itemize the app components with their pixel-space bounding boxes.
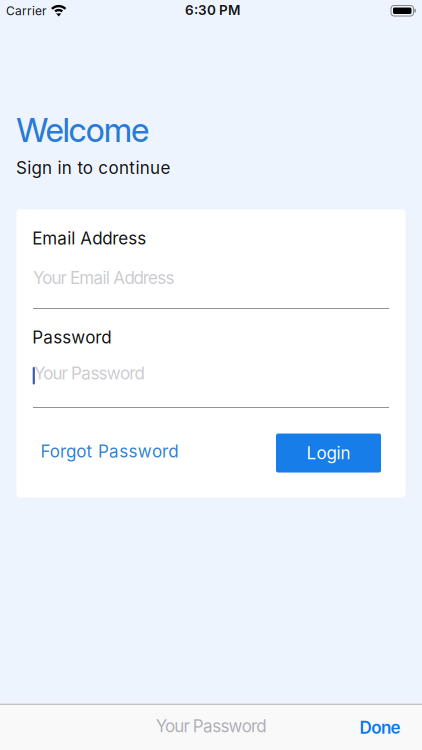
button[interactable]: Forgot Password: [40, 441, 178, 462]
staticText: 6:30 PM: [185, 2, 240, 18]
button[interactable]: Login: [276, 433, 381, 472]
staticText: Your Email Address: [33, 267, 174, 288]
staticText: Email Address: [32, 228, 146, 249]
staticText: Password: [32, 327, 111, 348]
staticText: Your Password: [34, 363, 144, 384]
button[interactable]: Your Password: [33, 357, 389, 408]
staticText: Sign in to continue: [16, 157, 170, 178]
staticText: Done: [359, 717, 401, 738]
staticText: Your Password: [156, 716, 266, 736]
staticText: Login: [306, 443, 350, 463]
staticText: Welcome: [16, 110, 149, 150]
staticText: Carrier: [6, 3, 47, 18]
button[interactable]: Your Email Address: [33, 261, 389, 309]
staticText: Forgot Password: [40, 441, 178, 462]
button[interactable]: Done: [359, 717, 401, 738]
